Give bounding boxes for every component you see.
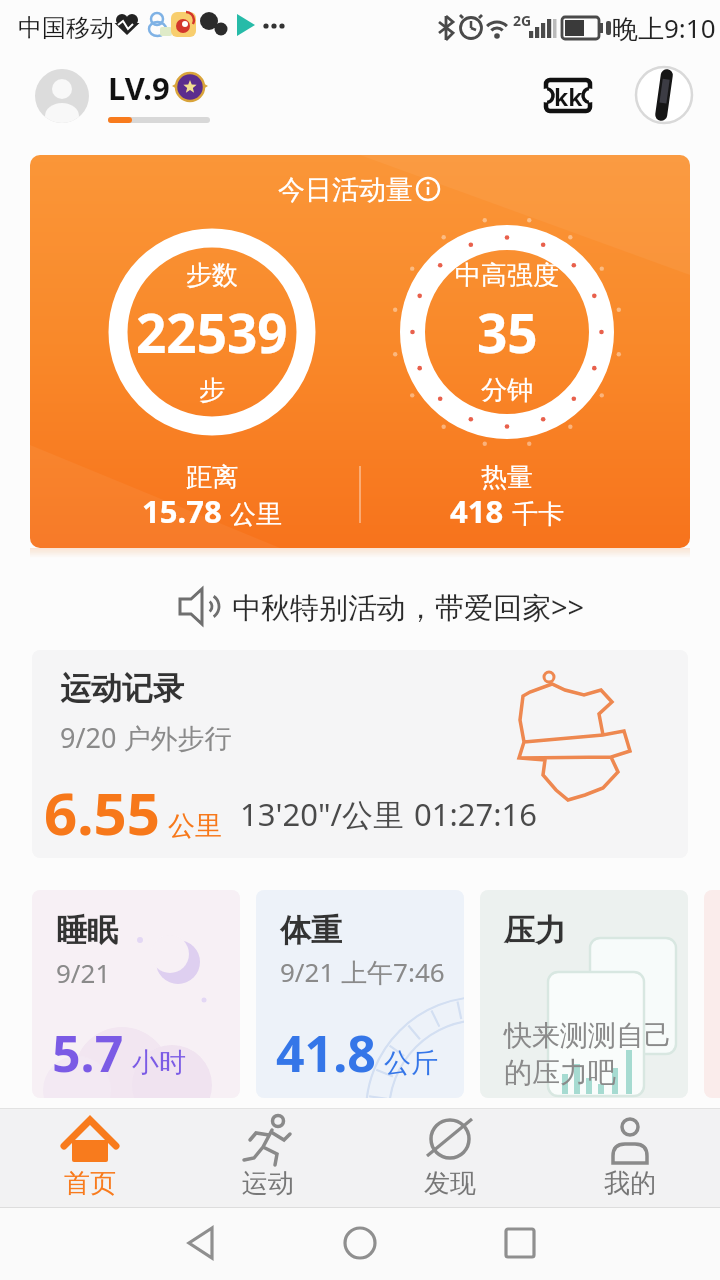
staticText: 我的 — [604, 1167, 656, 1200]
staticText: 9/20 户外步行 — [60, 719, 232, 756]
staticText: 6.55 — [44, 773, 160, 852]
staticText: 运动 — [242, 1167, 294, 1200]
staticText: 公里 — [230, 498, 282, 531]
staticText: 418 — [450, 490, 504, 532]
staticText: 步 — [199, 374, 225, 407]
staticText: 公斤 — [384, 1046, 438, 1080]
staticText: 分钟 — [481, 374, 533, 407]
staticText: 9/21 — [56, 955, 111, 990]
staticText: 千卡 — [512, 498, 564, 531]
staticText: kk — [554, 81, 583, 112]
staticText: 中国移动 — [18, 13, 114, 43]
staticText: 今日活动量 — [278, 173, 413, 207]
staticText: 9/21 上午7:46 — [280, 954, 445, 990]
staticText: 的压力吧 — [504, 1055, 616, 1090]
staticText: 5.7 — [52, 1019, 124, 1087]
staticText: 小时 — [132, 1046, 186, 1080]
staticText: 15.78 — [142, 490, 222, 532]
staticText: 22539 — [136, 296, 288, 368]
staticText: 中秋特别活动，带爱回家>> — [232, 587, 585, 627]
staticText: 热量 — [481, 461, 533, 494]
staticText: 13'20"/公里 — [240, 793, 405, 835]
staticText: 晚上9:10 — [612, 10, 716, 46]
staticText: LV.9 — [108, 67, 170, 109]
staticText: 睡眠 — [56, 911, 118, 950]
staticText: 首页 — [64, 1167, 116, 1200]
staticText: 距离 — [186, 461, 238, 494]
staticText: 2G — [513, 11, 532, 30]
staticText: 41.8 — [276, 1019, 376, 1087]
staticText: 快来测测自己 — [504, 1018, 672, 1053]
staticText: 01:27:16 — [414, 793, 538, 835]
staticText: 压力 — [504, 911, 566, 950]
staticText: 中高强度 — [455, 259, 559, 292]
staticText: 公里 — [168, 809, 222, 843]
staticText: 步数 — [186, 259, 238, 292]
staticText: 运动记录 — [60, 669, 184, 708]
staticText: 35 — [477, 296, 538, 368]
staticText: 体重 — [280, 911, 342, 950]
staticText: 发现 — [424, 1167, 476, 1200]
